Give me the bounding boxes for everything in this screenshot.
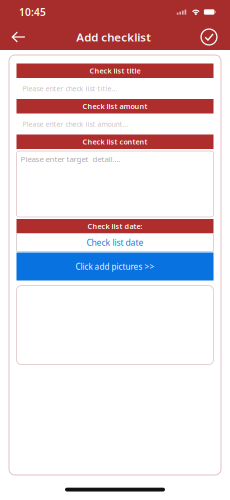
staticText: Check list date: <box>87 221 142 231</box>
staticText: Add checklist <box>76 29 151 45</box>
button[interactable]: Save <box>196 24 221 50</box>
button[interactable]: Click add pictures >> <box>16 252 213 280</box>
staticText: Please enter target detail.... <box>20 153 120 164</box>
staticText: Click add pictures >> <box>75 261 154 272</box>
staticText: 10:45 <box>19 5 46 19</box>
staticText: Please enter check list amount... <box>22 119 128 129</box>
staticText: Check list date <box>86 237 143 248</box>
staticText: Check list content <box>82 137 147 147</box>
staticText: Please enter check list title... <box>22 84 117 93</box>
staticText: Check list title <box>89 66 140 76</box>
button[interactable]: Check list date <box>16 233 213 251</box>
staticText: Check list amount <box>82 101 147 111</box>
button[interactable]: Back <box>6 24 31 50</box>
